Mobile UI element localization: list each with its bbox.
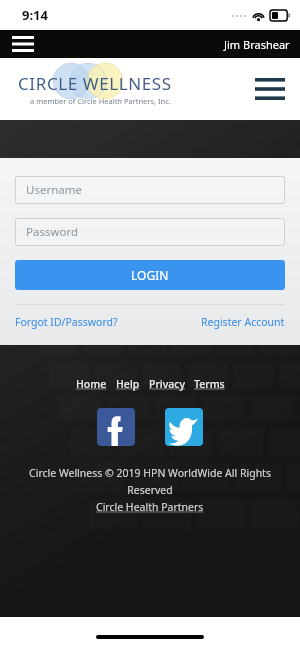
button[interactable]: Circle Health Partners [96, 500, 204, 514]
staticText: 9:14 [22, 6, 48, 24]
button[interactable]: Help [116, 377, 140, 391]
button[interactable]: Terms [194, 377, 225, 391]
staticText: Circle Wellness © 2019 HPN WorldWide All… [12, 466, 288, 497]
button[interactable]: Open navigation menu [253, 75, 287, 103]
button[interactable]: Menu [10, 33, 36, 55]
staticText: CIRCLE WELLNESS [18, 72, 172, 95]
button[interactable]: Twitter [165, 408, 203, 446]
button[interactable]: Jim Brashear [224, 37, 290, 52]
button[interactable]: LOGIN [15, 260, 285, 290]
button[interactable]: Forgot ID/Password? [15, 315, 118, 329]
button[interactable]: Password [15, 218, 285, 246]
staticText: Username [26, 182, 82, 198]
staticText: LOGIN [131, 267, 169, 283]
staticText: a member of Circle Health Partners, Inc. [30, 96, 171, 106]
button[interactable]: Privacy [149, 377, 185, 391]
button[interactable]: Facebook [97, 408, 135, 446]
button[interactable]: Username [15, 176, 285, 204]
button[interactable]: Home [76, 377, 107, 391]
staticText: Password [26, 224, 79, 240]
button[interactable]: Register Account [201, 315, 285, 329]
